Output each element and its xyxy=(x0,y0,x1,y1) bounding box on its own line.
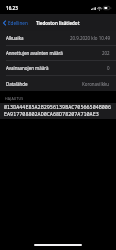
staticText: Avainsanojen määrä xyxy=(6,65,49,71)
staticText: Annettujen avainten määrä xyxy=(6,50,63,56)
button[interactable]: Alkuaika xyxy=(0,31,116,46)
staticText: 202 xyxy=(102,50,110,56)
staticText: 20.9.2020 klo 10.49 xyxy=(70,35,110,41)
staticText: Edellinen xyxy=(8,20,28,26)
button[interactable]: Back xyxy=(0,16,31,30)
staticText: 013DA44E85A2B2956139BAC70566504B006EA917… xyxy=(4,104,113,117)
staticText: Tiedoston lisätiedot xyxy=(36,20,80,26)
button[interactable]: Annettujen avainten määrä xyxy=(0,46,116,61)
other: Back xyxy=(3,20,6,26)
staticText: HAJAUTUS xyxy=(5,96,24,101)
staticText: Datalähde xyxy=(6,81,28,87)
button[interactable]: Avainsanojen määrä xyxy=(0,61,116,76)
staticText: 16.23 xyxy=(6,5,18,11)
button[interactable]: Datalähde xyxy=(0,76,116,91)
staticText: Koronavilkku xyxy=(82,81,110,87)
button[interactable]: 013DA44E85A2B2956139BAC70566504B006EA917… xyxy=(0,103,116,119)
staticText: Alkuaika xyxy=(6,35,24,41)
staticText: 0 xyxy=(107,65,110,71)
